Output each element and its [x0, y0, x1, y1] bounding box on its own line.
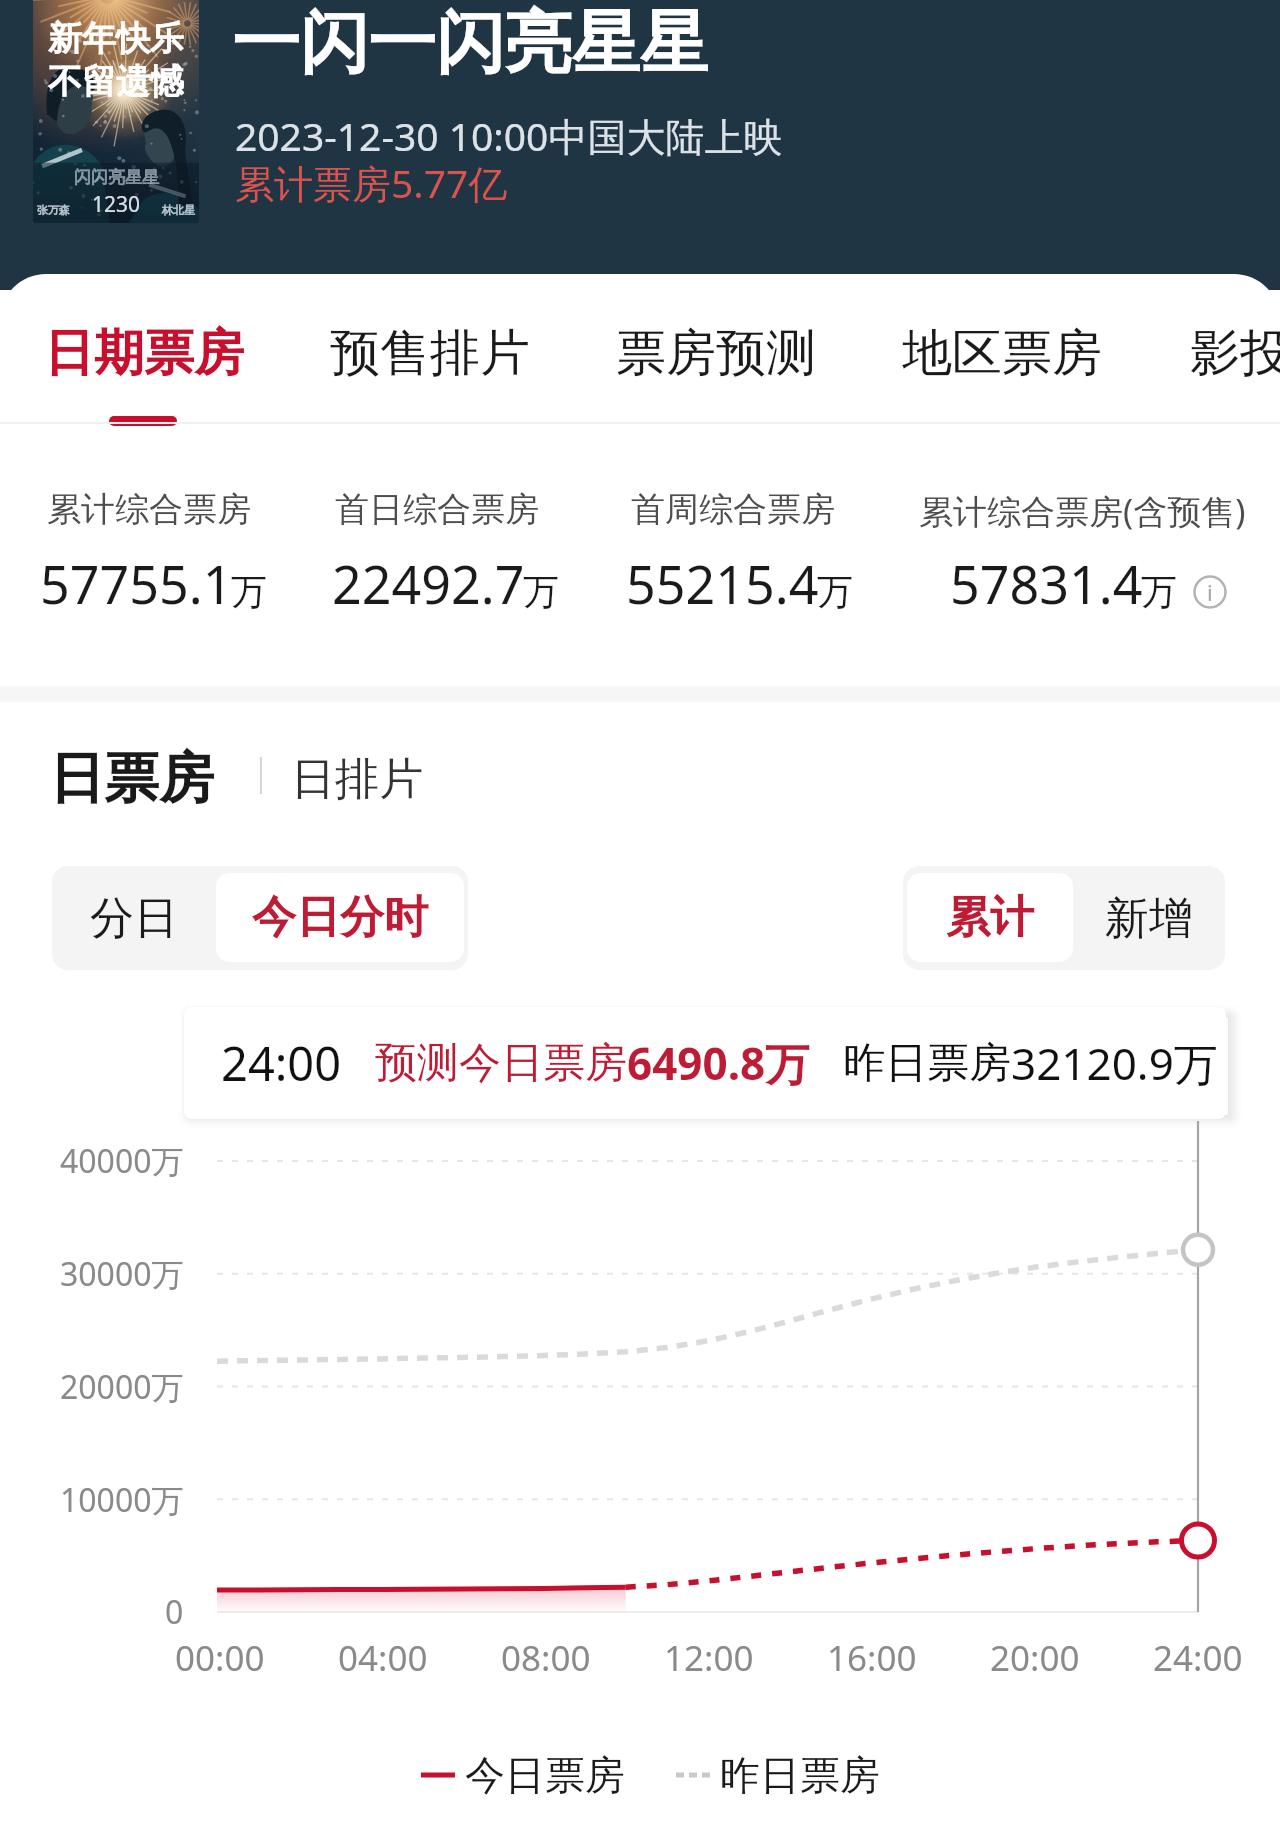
staticText: 57755.1: [40, 548, 233, 619]
staticText: 55215.4: [626, 548, 819, 619]
staticText: 04:00: [338, 1634, 428, 1682]
button[interactable]: 今日分时: [216, 873, 464, 962]
staticText: 0: [165, 1590, 184, 1634]
button[interactable]: 预售排片: [324, 284, 536, 424]
button[interactable]: 累计: [907, 873, 1073, 962]
staticText: 24:00: [221, 1031, 342, 1095]
staticText: 影投: [1190, 322, 1280, 385]
staticText: 20:00: [990, 1634, 1080, 1682]
staticText: 首日综合票房: [335, 488, 539, 531]
button[interactable]: 地区票房: [896, 284, 1108, 424]
staticText: 32120.9万: [1011, 1033, 1218, 1093]
staticText: 昨日票房: [843, 1037, 1011, 1090]
staticText: 日排片: [291, 752, 423, 807]
staticText: 6490.8万: [627, 1033, 810, 1093]
staticText: 万: [1141, 569, 1177, 614]
staticText: 预测今日票房: [375, 1037, 627, 1090]
button[interactable]: 影投: [1182, 284, 1280, 424]
staticText: 地区票房: [902, 322, 1102, 385]
staticText: 一闪一闪亮星星: [232, 1, 708, 87]
staticText: 24:00: [1153, 1634, 1243, 1682]
button[interactable]: 新增: [1073, 866, 1225, 970]
staticText: 22492.7: [332, 548, 525, 619]
staticText: 万: [523, 569, 559, 614]
staticText: 不留遗憾: [48, 60, 184, 103]
staticText: 40000万: [60, 1139, 184, 1183]
staticText: i: [1207, 577, 1213, 607]
staticText: 新年快乐: [48, 17, 184, 60]
staticText: 2023-12-30 10:00中国大陆上映: [235, 109, 783, 162]
staticText: 16:00: [827, 1634, 917, 1682]
staticText: 新增: [1105, 891, 1193, 946]
button[interactable]: 电影海报 一闪一闪亮星星: [33, 0, 199, 223]
button[interactable]: 票房预测: [610, 284, 822, 424]
staticText: 昨日票房: [720, 1750, 880, 1800]
staticText: 12:00: [664, 1634, 754, 1682]
button[interactable]: 日排片: [291, 752, 423, 807]
staticText: 累计: [946, 890, 1034, 945]
staticText: 累计综合票房(含预售): [919, 488, 1246, 534]
button[interactable]: 昨日票房: [676, 1750, 880, 1800]
staticText: 08:00: [501, 1634, 591, 1682]
button[interactable]: Info: [1193, 575, 1227, 609]
staticText: 1230: [92, 190, 141, 219]
staticText: 累计票房5.77亿: [235, 156, 508, 209]
staticText: 今日票房: [465, 1750, 625, 1800]
button[interactable]: 日票房: [49, 744, 214, 813]
staticText: 00:00: [175, 1634, 265, 1682]
button[interactable]: 分日: [52, 866, 216, 970]
staticText: 日票房: [49, 744, 214, 813]
staticText: 票房预测: [616, 322, 816, 385]
staticText: 闪闪亮星星: [74, 167, 159, 188]
staticText: 预售排片: [330, 322, 530, 385]
staticText: 万: [231, 569, 267, 614]
staticText: 首周综合票房: [631, 488, 835, 531]
staticText: 57831.4: [950, 548, 1143, 619]
staticText: 今日分时: [252, 890, 428, 945]
staticText: 林北星: [162, 203, 195, 217]
staticText: 日期票房: [44, 322, 244, 385]
staticText: 10000万: [60, 1478, 184, 1522]
staticText: 分日: [90, 891, 178, 946]
staticText: 20000万: [60, 1365, 184, 1409]
staticText: 张万森: [37, 203, 70, 217]
button[interactable]: 今日票房: [421, 1750, 625, 1800]
staticText: 30000万: [60, 1252, 184, 1296]
staticText: 累计综合票房: [47, 488, 251, 531]
staticText: 万: [817, 569, 853, 614]
button[interactable]: 日期票房: [38, 284, 250, 424]
